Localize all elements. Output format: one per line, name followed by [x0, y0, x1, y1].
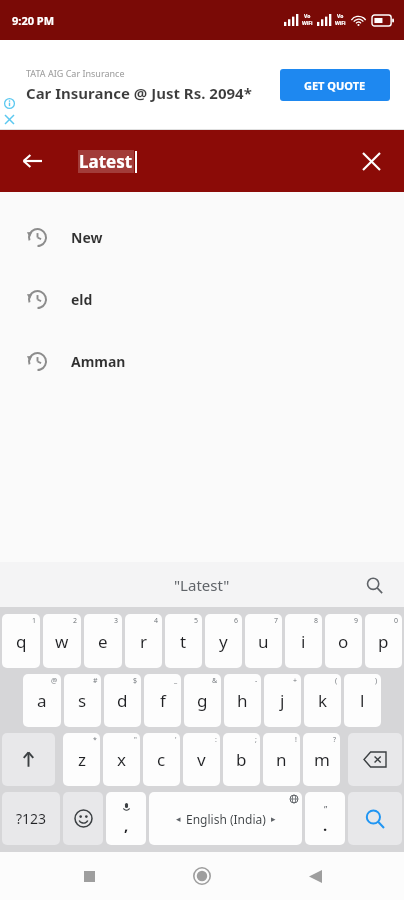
- button[interactable]: y: [205, 614, 242, 668]
- button[interactable]: Close ad: [2, 112, 16, 126]
- staticText: TATA AIG Car Insurance: [26, 67, 125, 79]
- staticText: ?123: [16, 809, 47, 828]
- staticText: eld: [71, 290, 93, 309]
- staticText: 0: [394, 616, 399, 626]
- button[interactable]: i: [285, 614, 322, 668]
- staticText: 9:20 PM: [12, 13, 55, 28]
- staticText: l: [360, 689, 365, 712]
- button[interactable]: Clear search: [350, 140, 392, 182]
- button[interactable]: p: [365, 614, 402, 668]
- button[interactable]: "Latest": [162, 571, 242, 599]
- staticText: 4: [154, 616, 159, 626]
- staticText: n: [276, 748, 287, 771]
- button[interactable]: Amman: [0, 330, 404, 392]
- staticText: 2: [73, 616, 78, 626]
- button[interactable]: Search: [348, 792, 402, 845]
- button[interactable]: o: [325, 614, 362, 668]
- staticText: ): [375, 676, 378, 686]
- button[interactable]: Recents: [65, 852, 113, 900]
- button[interactable]: z: [63, 733, 100, 786]
- button[interactable]: r: [125, 614, 162, 668]
- button[interactable]: eld: [0, 268, 404, 330]
- button[interactable]: u: [245, 614, 282, 668]
- staticText: i: [301, 630, 306, 653]
- button[interactable]: m: [303, 733, 340, 786]
- button[interactable]: e: [84, 614, 122, 668]
- staticText: f: [160, 689, 166, 712]
- button[interactable]: v: [183, 733, 220, 786]
- button[interactable]: g: [184, 674, 221, 727]
- staticText: o: [338, 630, 349, 653]
- button[interactable]: w: [43, 614, 81, 668]
- staticText: *: [93, 735, 97, 745]
- button[interactable]: f: [144, 674, 181, 727]
- button[interactable]: t: [165, 614, 202, 668]
- staticText: v: [197, 748, 206, 771]
- staticText: j: [280, 689, 285, 712]
- staticText: 8: [314, 616, 319, 626]
- staticText: r: [140, 630, 148, 653]
- button[interactable]: Latest: [78, 150, 137, 173]
- staticText: &: [212, 676, 218, 686]
- staticText: #: [93, 676, 98, 686]
- button[interactable]: New: [0, 206, 404, 268]
- staticText: GET QUOTE: [304, 78, 366, 93]
- button[interactable]: Period: [305, 792, 345, 845]
- staticText: t: [180, 630, 187, 653]
- staticText: ◂: [176, 814, 181, 824]
- staticText: English (India): [186, 811, 266, 827]
- staticText: 7: [274, 616, 279, 626]
- button[interactable]: ◂: [149, 792, 302, 845]
- button[interactable]: Ad information: [2, 96, 16, 110]
- staticText: g: [197, 689, 208, 712]
- button[interactable]: k: [304, 674, 341, 727]
- button[interactable]: Backspace: [348, 733, 402, 786]
- button[interactable]: Emoji: [63, 792, 103, 845]
- staticText: ”: [324, 803, 328, 815]
- button[interactable]: j: [264, 674, 301, 727]
- staticText: c: [157, 748, 166, 771]
- button[interactable]: s: [64, 674, 101, 727]
- button[interactable]: Back: [291, 852, 339, 900]
- button[interactable]: h: [224, 674, 261, 727]
- staticText: 3: [114, 616, 119, 626]
- staticText: $: [133, 676, 138, 686]
- staticText: 1: [32, 616, 37, 626]
- staticText: b: [236, 748, 247, 771]
- staticText: ;: [255, 735, 257, 745]
- staticText: Vo: [304, 13, 311, 20]
- staticText: Latest: [79, 150, 133, 173]
- staticText: !: [295, 735, 297, 745]
- staticText: u: [258, 630, 269, 653]
- staticText: a: [37, 689, 47, 712]
- button[interactable]: Home: [178, 852, 226, 900]
- staticText: @: [51, 676, 58, 686]
- button[interactable]: a: [23, 674, 61, 727]
- staticText: k: [318, 689, 328, 712]
- staticText: h: [237, 689, 248, 712]
- button[interactable]: q: [2, 614, 40, 668]
- button[interactable]: ?123: [2, 792, 60, 845]
- button[interactable]: Shift: [2, 733, 55, 786]
- button[interactable]: d: [104, 674, 141, 727]
- button[interactable]: Back: [10, 139, 54, 183]
- staticText: :: [215, 735, 217, 745]
- button[interactable]: Search suggestion: [358, 569, 390, 601]
- staticText: x: [117, 748, 126, 771]
- button[interactable]: Comma: [106, 792, 146, 845]
- button[interactable]: c: [143, 733, 180, 786]
- button[interactable]: n: [263, 733, 300, 786]
- staticText: 9: [354, 616, 359, 626]
- button[interactable]: TATA AIG Car Insurance: [0, 40, 404, 130]
- staticText: Car Insurance @ Just Rs. 2094*: [26, 83, 252, 103]
- staticText: (: [335, 676, 338, 686]
- staticText: ,: [124, 815, 129, 835]
- staticText: _: [174, 676, 178, 686]
- staticText: ?: [333, 735, 337, 745]
- button[interactable]: x: [103, 733, 140, 786]
- button[interactable]: b: [223, 733, 260, 786]
- staticText: WiFi: [302, 20, 313, 27]
- button[interactable]: GET QUOTE: [280, 69, 390, 101]
- button[interactable]: l: [344, 674, 381, 727]
- staticText: ": [134, 735, 137, 745]
